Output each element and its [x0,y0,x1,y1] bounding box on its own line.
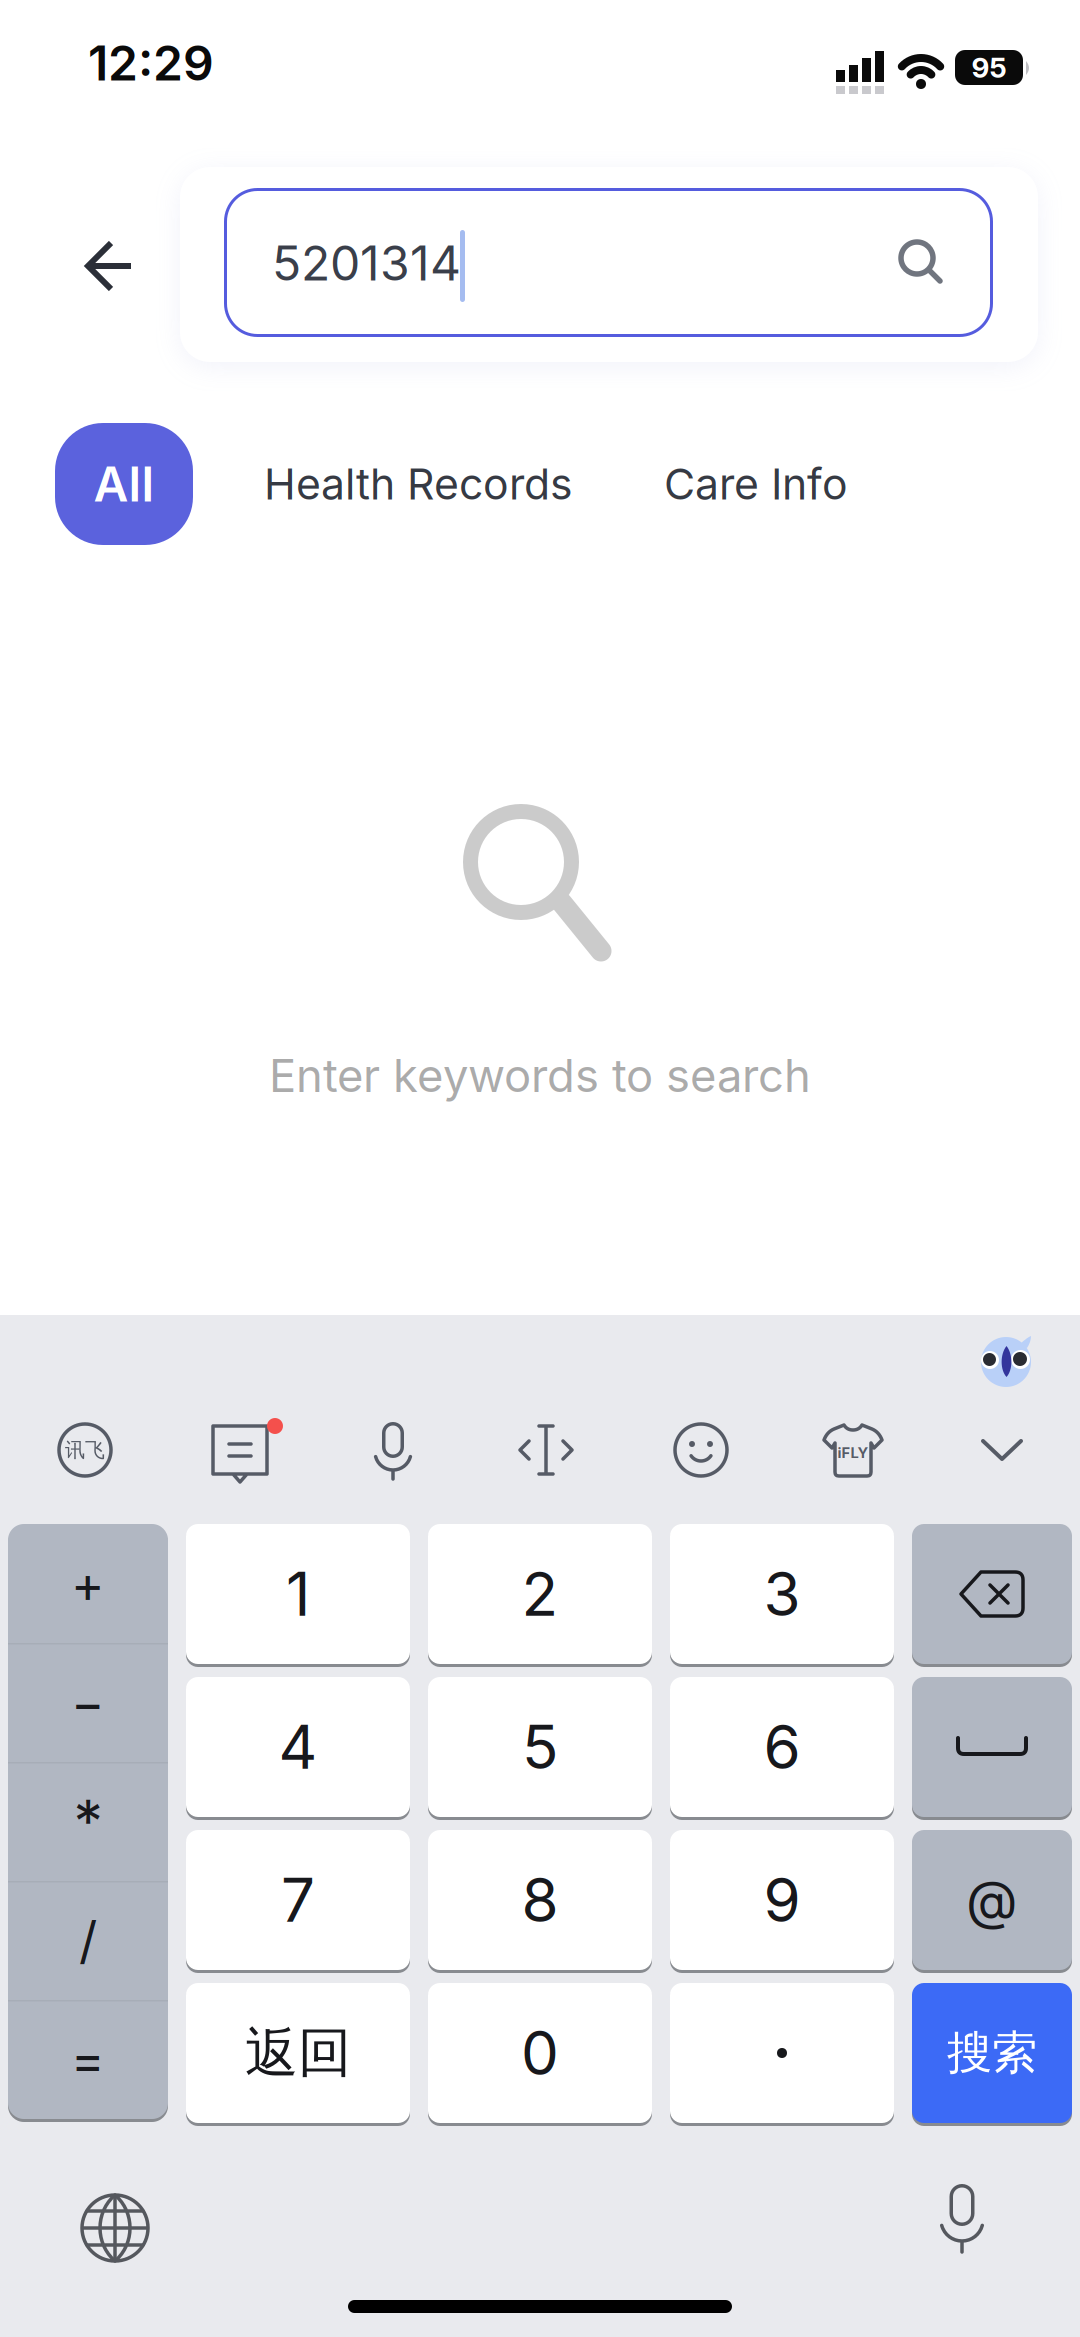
button[interactable]: Search field [224,188,993,337]
button[interactable]: . [670,1983,894,2123]
staticText: − [71,1672,105,1733]
button[interactable]: Delete [912,1524,1072,1664]
button[interactable]: Voice input [357,1414,429,1490]
button[interactable]: 8 [428,1830,652,1970]
staticText: 7 [281,1864,315,1936]
staticText: 讯飞 [65,1437,105,1463]
staticText: / [79,1910,97,1971]
button[interactable]: 搜索 [912,1983,1072,2123]
button[interactable]: Emoji [664,1413,738,1487]
button[interactable]: Dictate [922,2174,1002,2270]
button[interactable]: / [8,1881,168,2000]
staticText: 8 [521,1864,558,1936]
button[interactable]: Dismiss keyboard [969,1427,1035,1475]
button[interactable]: − [8,1643,168,1762]
button[interactable]: = [8,2000,168,2119]
staticText: 搜索 [947,2024,1037,2081]
button[interactable]: Space [912,1677,1072,1817]
staticText: 6 [763,1711,800,1783]
button[interactable]: 6 [670,1677,894,1817]
staticText: 2 [521,1558,558,1630]
staticText: Care Info [664,458,848,510]
button[interactable]: Back [70,226,150,306]
staticText: 0 [521,2017,559,2089]
staticText: All [93,455,154,513]
staticText: 5 [522,1711,558,1783]
button[interactable]: Messages [203,1416,291,1494]
staticText: = [71,2029,105,2090]
staticText: @ [966,1868,1018,1932]
staticText: 5201314 [272,234,461,292]
staticText: 返回 [245,2019,351,2087]
staticText: Enter keywords to search [269,1048,811,1103]
button[interactable]: 4 [186,1677,410,1817]
staticText: 1 [286,1558,310,1630]
button[interactable]: 返回 [186,1983,410,2123]
staticText: Health Records [264,458,573,510]
button[interactable]: 1 [186,1524,410,1664]
button[interactable]: Next keyboard [69,2182,161,2274]
button[interactable]: 3 [670,1524,894,1664]
button[interactable]: 0 [428,1983,652,2123]
button[interactable]: Cursor [509,1414,583,1486]
button[interactable]: iFlytek [49,1414,121,1486]
staticText: 3 [763,1558,800,1630]
staticText: iFLY [837,1444,868,1462]
button[interactable]: + [8,1524,168,1643]
staticText: 95 [971,51,1006,84]
staticText: * [73,1786,102,1857]
staticText: 4 [278,1711,317,1783]
staticText: + [71,1553,105,1614]
button[interactable]: @ [912,1830,1072,1970]
button[interactable]: All [55,423,193,545]
button[interactable]: 7 [186,1830,410,1970]
button[interactable]: Health Records [264,423,573,545]
button[interactable]: 9 [670,1830,894,1970]
button[interactable]: 5 [428,1677,652,1817]
button[interactable]: Themes [812,1414,894,1488]
staticText: 9 [763,1864,800,1936]
button[interactable]: 2 [428,1524,652,1664]
button[interactable]: * [8,1762,168,1881]
staticText: 12:29 [88,34,214,92]
button[interactable]: Care Info [664,423,848,545]
